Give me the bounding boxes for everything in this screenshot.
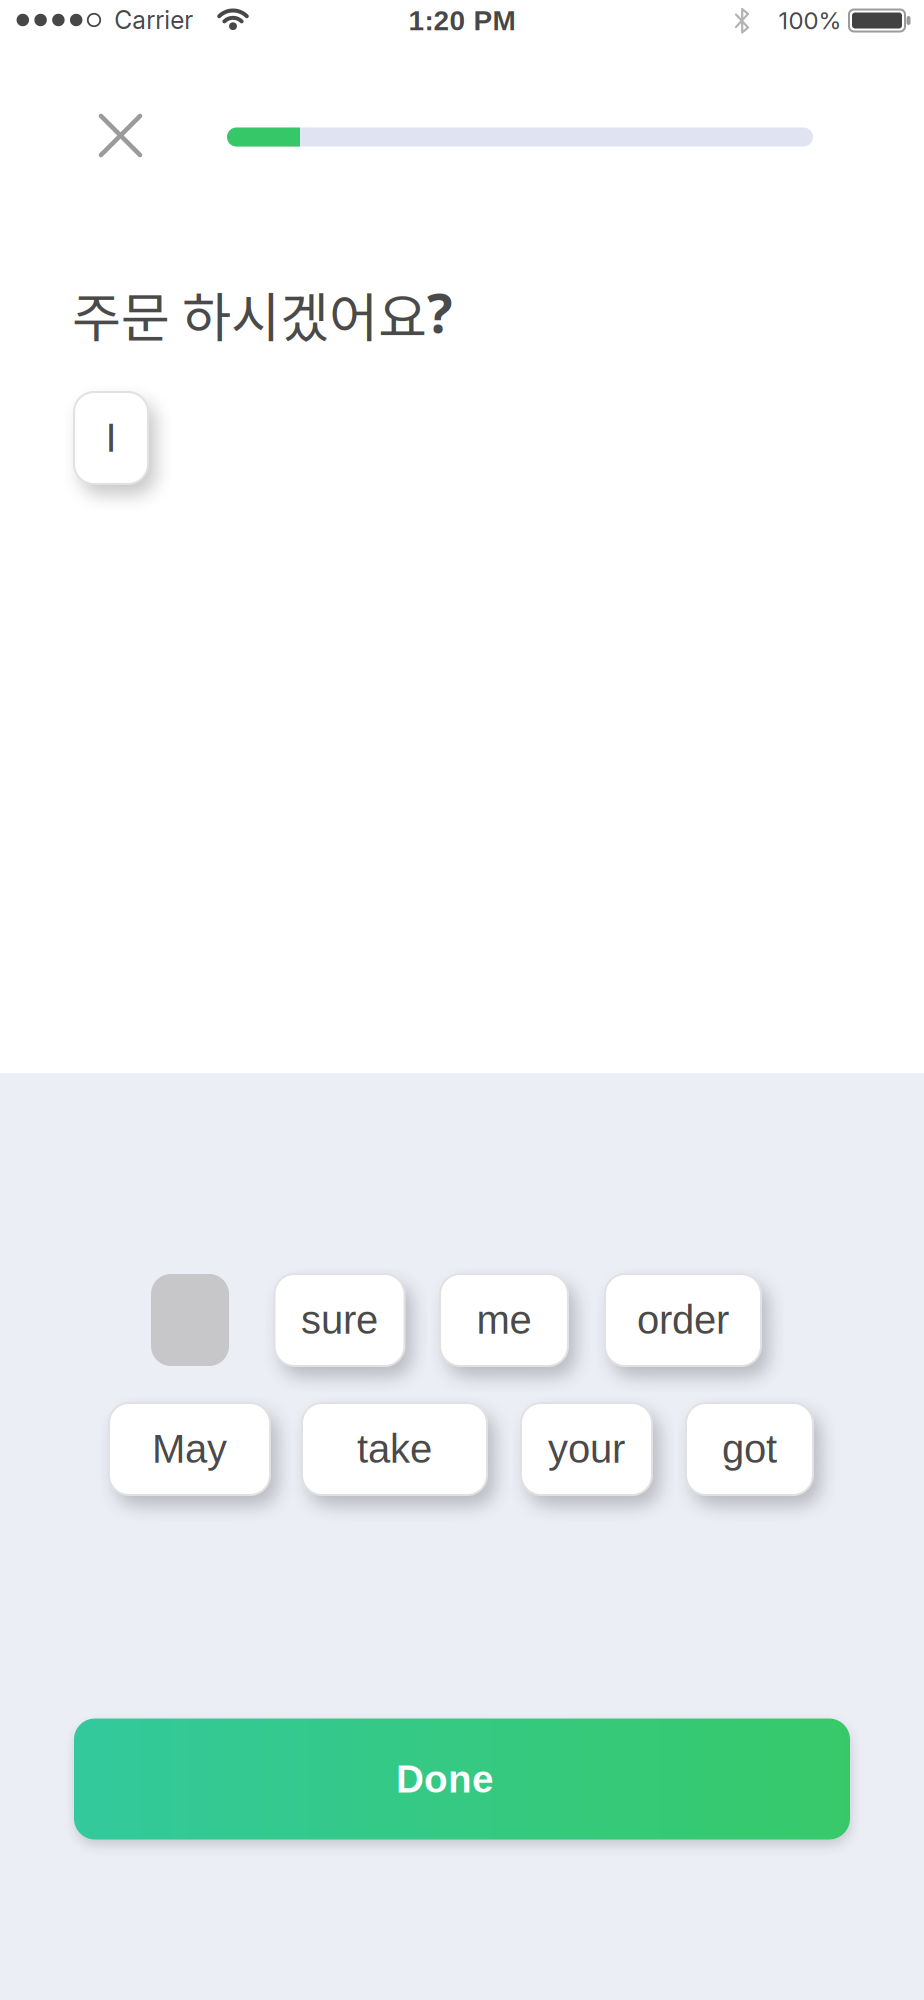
staticText: sure [301,1298,378,1342]
staticText: order [637,1298,729,1342]
staticText: take [357,1427,432,1471]
button[interactable]: your [521,1403,652,1495]
staticText: 100% [778,6,841,35]
staticText: Done [396,1757,494,1801]
staticText: your [548,1427,625,1471]
button[interactable]: sure [274,1274,404,1366]
staticText: 1:20 PM [408,5,515,36]
staticText: 주문 하시겠어요? [72,276,452,352]
button[interactable]: I [74,392,148,484]
button[interactable]: order [605,1274,761,1366]
button[interactable]: Close [80,95,161,176]
staticText: Carrier [114,5,193,35]
staticText: got [722,1427,777,1471]
staticText: I [105,416,116,460]
button[interactable]: take [302,1403,487,1495]
staticText: May [152,1427,227,1471]
button[interactable]: May [109,1403,270,1495]
button[interactable]: got [686,1403,813,1495]
staticText: me [476,1298,531,1342]
button[interactable]: me [440,1274,568,1366]
button[interactable]: Done [74,1718,850,1839]
